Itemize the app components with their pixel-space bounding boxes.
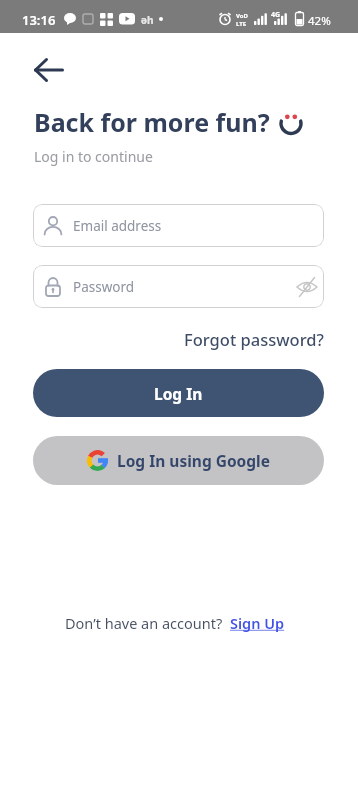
button[interactable]: Log In [33,369,324,417]
staticText: VoD [236,12,248,20]
staticText: LTE [236,20,247,28]
staticText: Log in to continue [34,147,153,166]
button[interactable]: Email address [33,204,324,247]
staticText: Log In using Google [117,450,270,471]
staticText: Email address [73,217,162,235]
staticText: 13:16 [22,11,56,29]
staticText: Log In [154,383,203,404]
button[interactable]: Log In using Google [33,436,324,485]
staticText: Don’t have an account? [65,613,223,633]
staticText: əh [141,13,154,27]
button[interactable]: Sign Up [230,613,285,633]
staticText: 4G [271,10,281,20]
button[interactable]: Forgot password? [184,328,324,350]
button[interactable]: Password [33,265,324,308]
staticText: Password [73,278,135,296]
staticText: Back for more fun? [34,105,270,139]
button[interactable] [25,46,73,94]
staticText: 42% [308,13,331,29]
